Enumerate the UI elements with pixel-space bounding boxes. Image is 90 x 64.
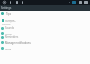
staticText: Manage notifications	[5, 41, 31, 45]
button[interactable]: Reminders	[0, 35, 90, 39]
button[interactable]	[0, 17, 90, 23]
button[interactable]: Sounds	[0, 26, 90, 30]
staticText: More	[5, 47, 12, 50]
button[interactable]: Alerts	[0, 31, 90, 35]
staticText: Settings	[1, 6, 12, 10]
button[interactable]: Settings	[0, 5, 90, 11]
button[interactable]: Manage notifications	[0, 40, 90, 45]
staticText: Sounds	[5, 26, 15, 30]
staticText: Account	[5, 18, 15, 21]
staticText: Tips	[6, 12, 11, 16]
staticText: some@mail	[5, 20, 16, 23]
staticText: Reminders	[5, 35, 19, 39]
other: Notification	[3, 1, 6, 4]
button[interactable]: More	[0, 46, 90, 51]
staticText: Alerts	[5, 32, 12, 35]
button[interactable]: Tips	[0, 11, 90, 16]
staticText: General	[2, 23, 11, 26]
